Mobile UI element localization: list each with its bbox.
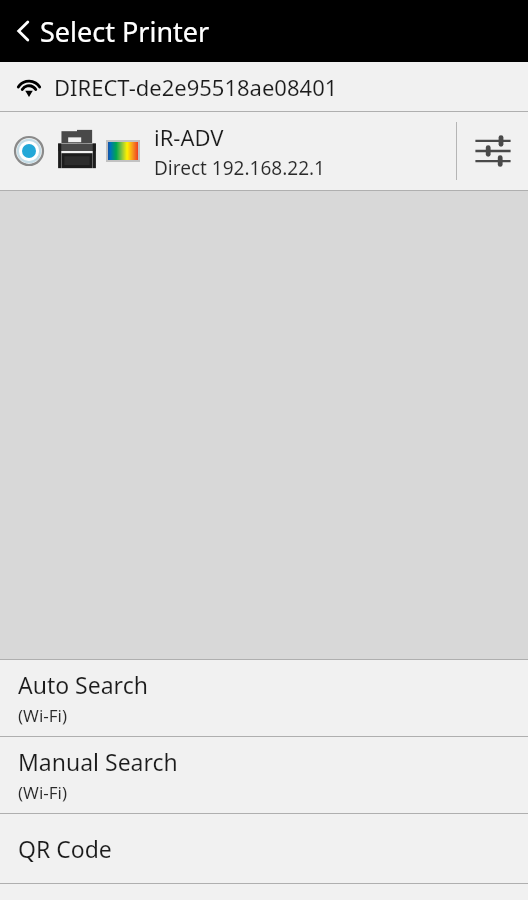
button[interactable]: Back xyxy=(0,0,528,62)
staticText: QR Code xyxy=(18,833,112,864)
button[interactable]: Printer settings xyxy=(457,112,528,190)
button[interactable]: Manual Search xyxy=(0,737,528,813)
button[interactable]: iR-ADV xyxy=(0,112,528,190)
staticText: (Wi-Fi) xyxy=(18,704,68,727)
staticText: iR-ADV xyxy=(154,122,224,152)
staticText: Manual Search xyxy=(18,746,178,777)
staticText: Auto Search xyxy=(18,669,148,700)
button[interactable]: QR Code xyxy=(0,814,528,883)
other: Back xyxy=(11,15,35,47)
staticText: DIRECT-de2e95518ae08401 xyxy=(54,72,338,102)
staticText: (Wi-Fi) xyxy=(18,781,68,804)
staticText: Direct 192.168.22.1 xyxy=(154,155,325,181)
button[interactable]: Auto Search xyxy=(0,660,528,736)
staticText: Select Printer xyxy=(40,13,210,50)
